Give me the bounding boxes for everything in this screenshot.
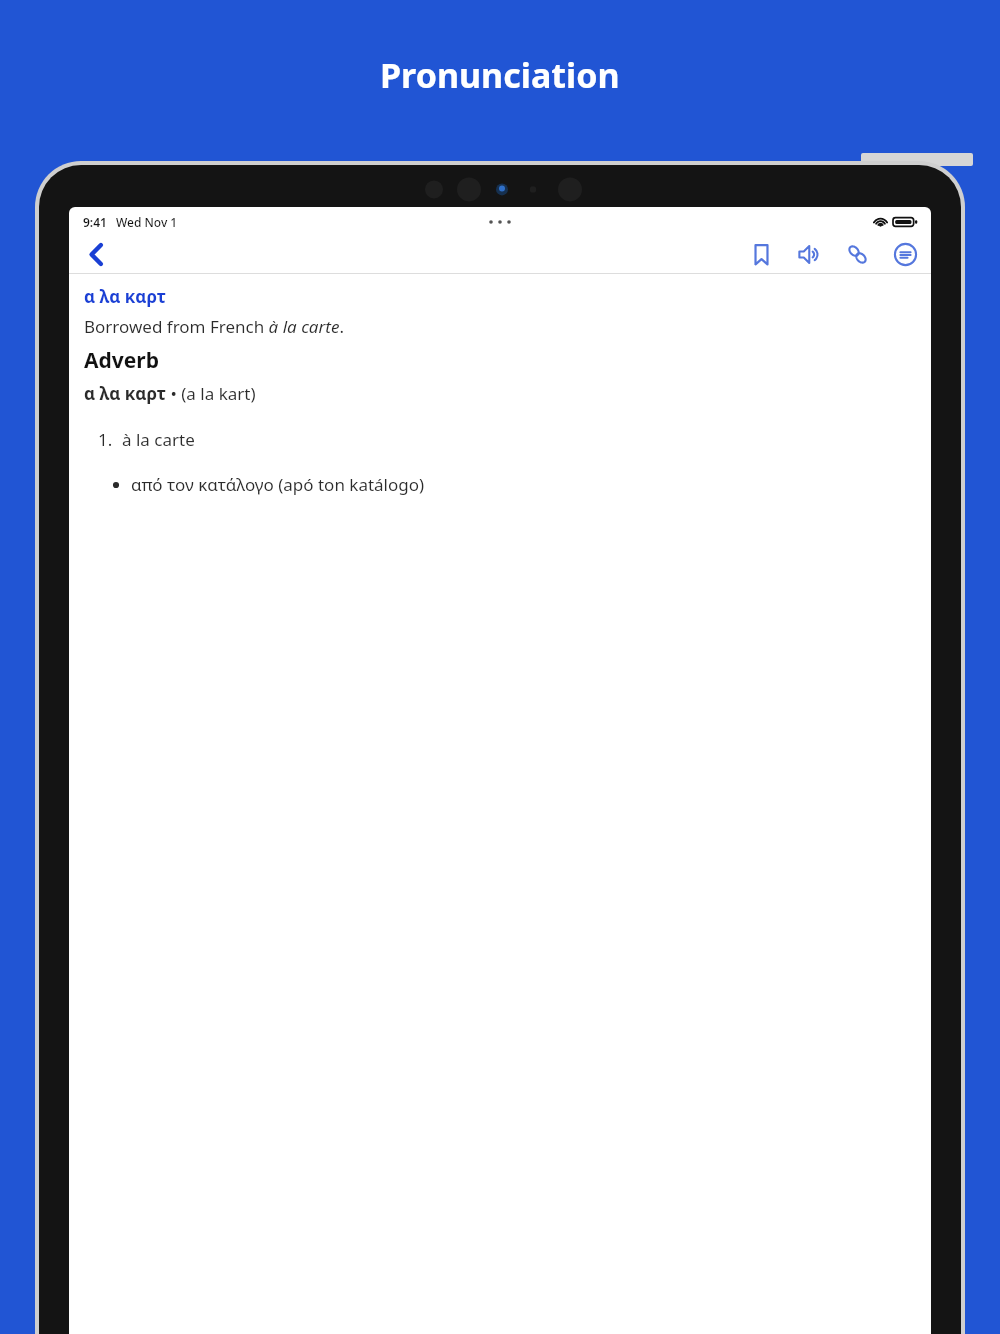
button[interactable]: Link bbox=[841, 236, 874, 273]
staticText: Borrowed from French à la carte. bbox=[84, 315, 344, 338]
staticText: α λα καρτ • (a la kart) bbox=[84, 382, 256, 405]
staticText: à la carte bbox=[122, 428, 195, 451]
staticText: Adverb bbox=[84, 346, 159, 375]
button[interactable]: Back bbox=[74, 236, 118, 273]
button[interactable]: Pronounce bbox=[793, 236, 826, 273]
button[interactable]: Bookmark bbox=[745, 236, 778, 273]
button[interactable]: More options bbox=[889, 236, 922, 273]
staticText: 1. bbox=[98, 428, 113, 451]
staticText: από τον κατάλογο (apó ton katálogo) bbox=[131, 473, 425, 496]
staticText: α λα καρτ bbox=[84, 285, 167, 308]
staticText: 9:41 bbox=[83, 214, 107, 230]
staticText: Wed Nov 1 bbox=[116, 214, 178, 230]
staticText: Pronunciation bbox=[380, 52, 620, 98]
